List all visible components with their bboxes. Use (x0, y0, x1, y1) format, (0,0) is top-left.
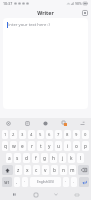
button[interactable]: . (71, 177, 77, 187)
button[interactable]: t (37, 141, 44, 151)
button[interactable]: 1 (2, 130, 8, 139)
staticText: 0 (84, 132, 87, 138)
button[interactable]: Keyboard layout (71, 189, 82, 200)
button[interactable]: Space (30, 177, 61, 187)
button[interactable]: h (50, 153, 57, 163)
button[interactable]: n (60, 165, 67, 175)
staticText: 8 (66, 132, 69, 138)
staticText: o (75, 143, 78, 150)
button[interactable]: i (64, 141, 71, 151)
button[interactable]: Settings (81, 9, 88, 16)
button[interactable]: z (15, 165, 22, 175)
staticText: r (31, 143, 33, 150)
button[interactable]: m (69, 165, 76, 175)
button[interactable]: u (55, 141, 62, 151)
button[interactable]: More options (78, 119, 87, 128)
staticText: 98% (75, 1, 82, 6)
button[interactable]: a (6, 153, 12, 163)
button[interactable]: e (19, 141, 26, 151)
staticText: k (70, 155, 73, 162)
staticText: English(US) (37, 180, 54, 184)
staticText: v (44, 167, 47, 174)
staticText: f (35, 155, 37, 162)
button[interactable]: · (22, 177, 28, 187)
staticText: , (16, 179, 18, 185)
staticText: !#1 (4, 180, 10, 185)
staticText: m (70, 167, 75, 174)
staticText: a (8, 155, 11, 162)
button[interactable]: r (28, 141, 35, 151)
staticText: 10:37 (3, 1, 13, 6)
staticText: · (24, 179, 26, 185)
staticText: 6 (48, 132, 51, 138)
button[interactable]: 7 (55, 130, 62, 139)
button[interactable]: 6 (46, 130, 53, 139)
staticText: x (26, 167, 29, 174)
button[interactable]: v (42, 165, 49, 175)
staticText: w (12, 143, 16, 150)
staticText: e (21, 143, 24, 150)
button[interactable]: 0 (82, 130, 89, 139)
button[interactable]: p (82, 141, 89, 151)
staticText: . (73, 179, 75, 185)
staticText: 1 (4, 132, 7, 138)
button[interactable]: Backspace (78, 165, 89, 175)
button[interactable]: c (33, 165, 40, 175)
staticText: Writer (37, 9, 54, 16)
button[interactable]: Stickers (41, 119, 50, 128)
staticText: j (62, 155, 64, 162)
button[interactable]: d (23, 153, 30, 163)
button[interactable]: q (2, 141, 8, 151)
button[interactable]: g (41, 153, 48, 163)
staticText: y (48, 143, 51, 150)
button[interactable]: s (14, 153, 21, 163)
staticText: l (80, 155, 82, 162)
button[interactable]: Enter your text here :) (3, 18, 88, 109)
button[interactable]: x (24, 165, 31, 175)
button[interactable]: o (73, 141, 80, 151)
button[interactable]: k (68, 153, 75, 163)
staticText: c (35, 167, 38, 174)
button[interactable]: Enter (79, 177, 89, 187)
staticText: 7 (57, 132, 60, 138)
button[interactable]: Translate (60, 119, 69, 128)
button[interactable]: 8 (64, 130, 71, 139)
button[interactable]: 9 (73, 130, 80, 139)
button[interactable]: f (32, 153, 39, 163)
button[interactable]: 2 (10, 130, 17, 139)
button[interactable]: !#1 (2, 177, 12, 187)
staticText: z (17, 167, 20, 174)
button[interactable]: w (10, 141, 17, 151)
button[interactable]: · (63, 177, 69, 187)
button[interactable]: j (59, 153, 66, 163)
staticText: s (16, 155, 19, 162)
staticText: i (67, 143, 69, 150)
button[interactable]: y (46, 141, 53, 151)
button[interactable]: Clipboard (23, 119, 32, 128)
button[interactable]: Settings (4, 119, 13, 128)
staticText: 3 (21, 132, 24, 138)
button[interactable]: 4 (28, 130, 35, 139)
staticText: 5 (39, 132, 42, 138)
staticText: q (4, 143, 7, 150)
staticText: 9 (75, 132, 78, 138)
staticText: t (40, 143, 42, 150)
staticText: Enter your text here :) (7, 22, 50, 28)
staticText: b (53, 167, 56, 174)
staticText: d (25, 155, 28, 162)
staticText: g (43, 155, 46, 162)
staticText: · (65, 179, 67, 185)
button[interactable]: l (77, 153, 84, 163)
button[interactable]: Shift (2, 165, 13, 175)
staticText: n (62, 167, 65, 174)
button[interactable]: Hide keyboard (50, 189, 61, 200)
button[interactable]: 3 (19, 130, 26, 139)
staticText: 2 (12, 132, 15, 138)
button[interactable]: , (14, 177, 20, 187)
button[interactable]: b (51, 165, 58, 175)
button[interactable]: 5 (37, 130, 44, 139)
button[interactable]: Home (30, 189, 41, 200)
button[interactable]: Recent apps (9, 189, 20, 200)
staticText: 4 (30, 132, 33, 138)
staticText: h (52, 155, 55, 162)
